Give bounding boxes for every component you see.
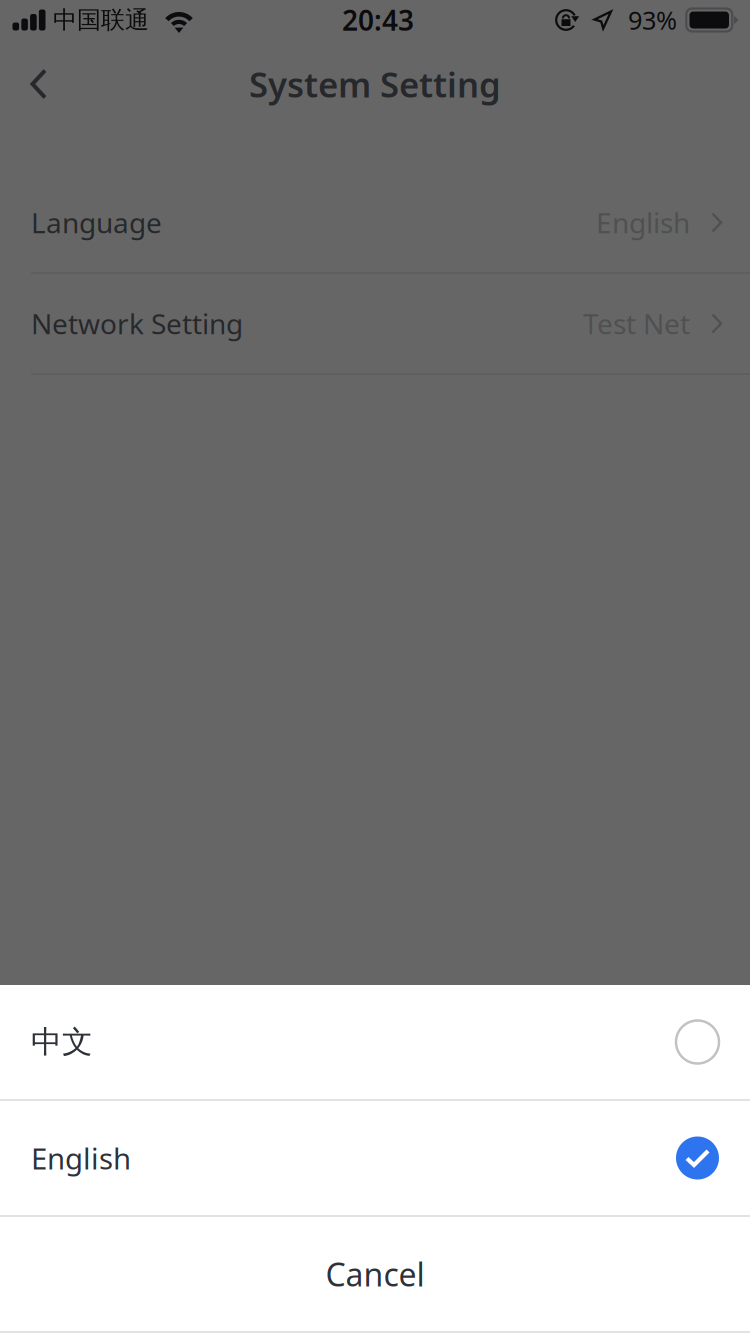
staticText: English [31,1138,131,1177]
button[interactable]: 中文 [0,985,750,1099]
staticText: 93% [628,3,677,37]
staticText: Language [31,204,162,241]
button[interactable]: Language [0,173,750,272]
staticText: Cancel [325,1253,424,1295]
button[interactable]: English [0,1101,750,1215]
staticText: 20:43 [342,1,414,39]
staticText: System Setting [249,61,501,107]
staticText: 中文 [31,1023,93,1061]
button[interactable]: Cancel [0,1217,750,1331]
staticText: 中国联通 [53,5,149,35]
staticText: Test Net [583,305,690,342]
staticText: English [596,204,690,241]
staticText: Network Setting [31,305,243,342]
button[interactable]: Network Setting [0,274,750,373]
button[interactable]: Back [0,45,84,123]
